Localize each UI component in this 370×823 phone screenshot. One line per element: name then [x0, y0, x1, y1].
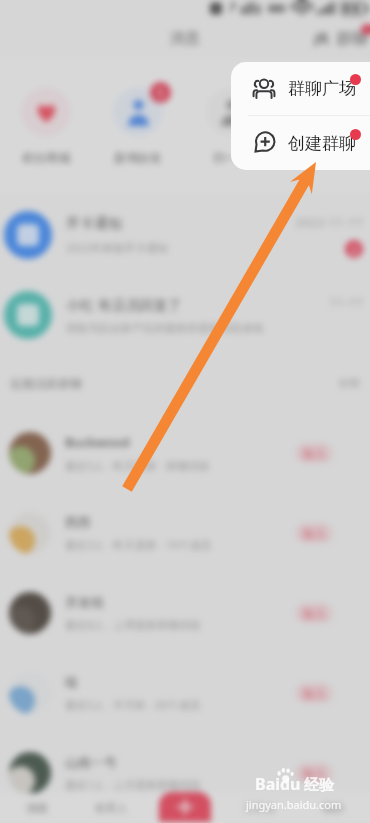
staticText: 最近1人 · 上月更新群聊消息: [65, 777, 201, 792]
staticText: 加入: [302, 766, 326, 781]
staticText: 经验: [304, 776, 334, 795]
button[interactable]: 创建群聊: [231, 116, 370, 170]
button[interactable]: 我的: [296, 793, 370, 823]
staticText: 最近8人 · 上周更新群聊消息: [65, 617, 201, 632]
button[interactable]: 扫一扫: [184, 60, 277, 191]
staticText: 近期活跃群聊: [10, 376, 82, 391]
staticText: 加入: [302, 606, 326, 621]
staticText: 最近3人 · 昨天更新 · 10个成员: [65, 537, 212, 552]
button[interactable]: 群聊广场: [231, 62, 370, 115]
staticText: 小红 有店员回复了: [66, 295, 182, 314]
staticText: 西西: [65, 514, 91, 530]
staticText: jingyan.baidu.com: [246, 797, 342, 812]
staticText: 加入: [302, 446, 326, 461]
staticText: 群聊广场: [288, 78, 356, 99]
staticText: 钱包: [312, 150, 336, 165]
staticText: 积分商城: [22, 150, 70, 165]
button[interactable]: 新建: [159, 792, 211, 822]
staticText: 创建群聊: [288, 133, 356, 154]
staticText: 群聊: [336, 29, 368, 49]
staticText: 工作台: [243, 801, 276, 815]
button[interactable]: 开发组: [9, 573, 333, 653]
staticText: 全部: [338, 376, 360, 390]
staticText: 新增好友: [114, 150, 162, 165]
button[interactable]: 加入: [295, 763, 333, 783]
button[interactable]: Buckwood: [9, 413, 333, 493]
staticText: 2: [351, 242, 358, 257]
button[interactable]: 1: [92, 60, 184, 191]
staticText: 最近5人 · 半月前 · 20个成员: [65, 697, 201, 712]
button[interactable]: 西西: [9, 493, 333, 573]
staticText: 加入: [302, 686, 326, 701]
staticText: 2022年新版开卡通知: [66, 240, 169, 255]
button[interactable]: 加入: [295, 443, 333, 463]
button[interactable]: 消息: [0, 793, 74, 823]
staticText: 扫一扫: [213, 150, 249, 165]
staticText: 最近5人 · 昨天更新 · 群聊消息: [65, 458, 210, 473]
button[interactable]: 联系人: [74, 793, 148, 823]
button[interactable]: 开卡通知: [4, 195, 363, 275]
staticText: 1: [157, 85, 164, 101]
staticText: 开发组: [65, 594, 104, 610]
staticText: 您收到品达新产品的最新的更新消息来啦: [66, 321, 264, 335]
staticText: 我的: [322, 801, 344, 815]
button[interactable]: 小红 有店员回复了: [4, 275, 363, 355]
staticText: Buckwood: [65, 433, 130, 451]
button[interactable]: 工作台: [222, 793, 296, 823]
staticText: Baidu: [255, 773, 301, 795]
button[interactable]: 积分商城: [0, 60, 92, 191]
button[interactable]: 钱包: [277, 60, 370, 191]
staticText: 喵: [65, 674, 78, 690]
button[interactable]: 喵: [9, 653, 333, 733]
button[interactable]: 加入: [295, 683, 333, 703]
button[interactable]: 山南一号: [9, 733, 333, 813]
staticText: 山南一号: [65, 754, 117, 770]
button[interactable]: 加入: [295, 603, 333, 623]
staticText: 联系人: [95, 801, 128, 815]
button[interactable]: 加入: [295, 523, 333, 543]
staticText: 消息: [170, 29, 200, 48]
staticText: 消息: [26, 801, 48, 815]
staticText: 2022-11-17: [295, 213, 363, 231]
staticText: 开卡通知: [66, 215, 122, 233]
staticText: 加入: [302, 526, 326, 541]
button[interactable]: 群聊: [314, 29, 368, 49]
